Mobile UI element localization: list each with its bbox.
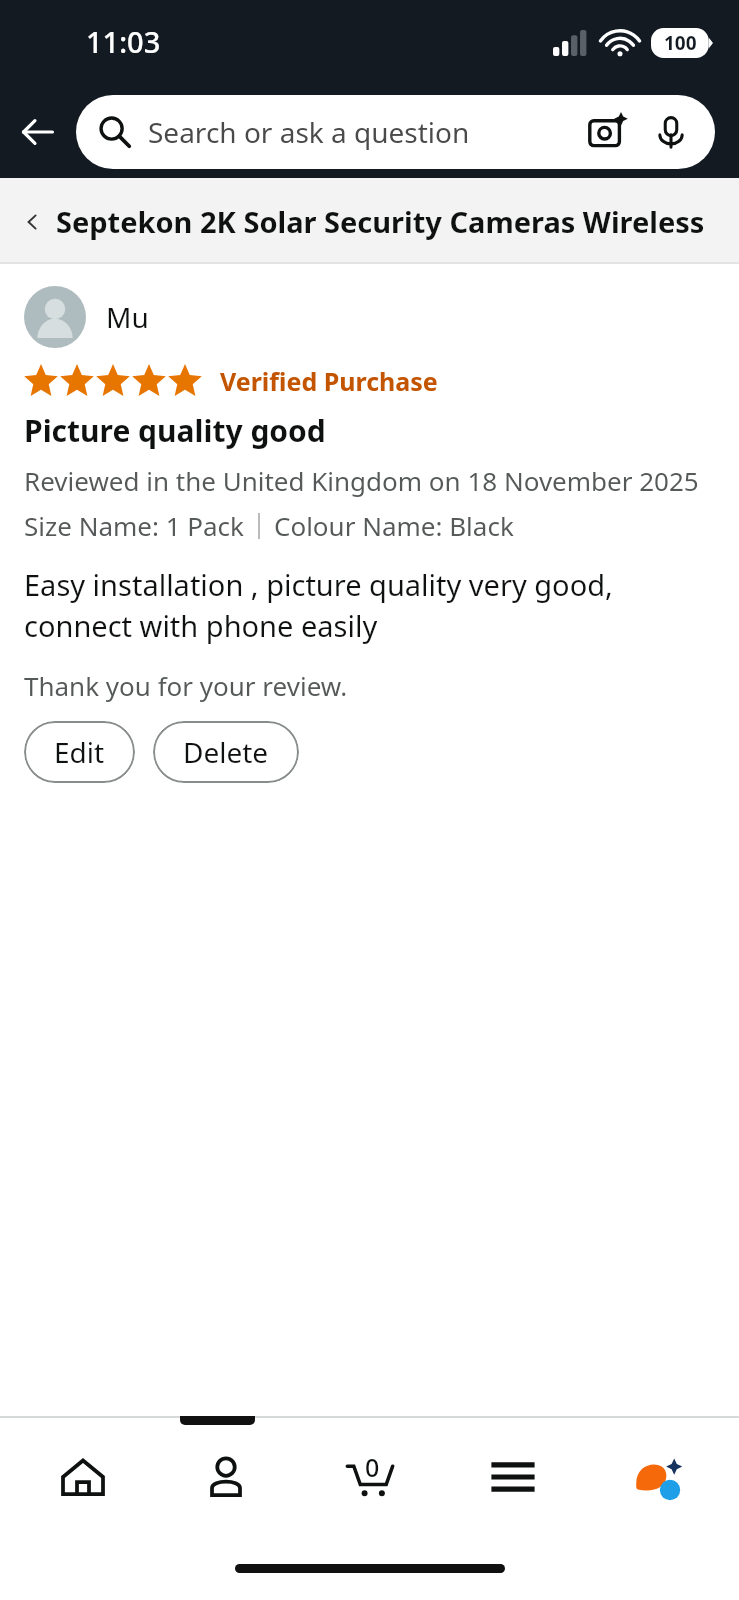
button[interactable]: Rufus assistant xyxy=(596,1418,716,1536)
staticText: Search or ask a question xyxy=(148,113,583,151)
button[interactable]: Cart xyxy=(310,1418,430,1536)
staticText: Reviewed in the United Kingdom on 18 Nov… xyxy=(24,463,699,498)
button[interactable]: Home xyxy=(23,1418,143,1536)
staticText: Delete xyxy=(183,733,269,771)
staticText: 0 xyxy=(365,1450,380,1484)
staticText: 100 xyxy=(664,30,697,56)
staticText: Edit xyxy=(54,733,105,771)
staticText: Easy installation , picture quality very… xyxy=(24,565,715,646)
staticText: Thank you for your review. xyxy=(24,668,348,703)
staticText: Septekon 2K Solar Security Cameras Wirel… xyxy=(56,202,723,241)
staticText: 11:03 xyxy=(86,22,161,61)
staticText: Verified Purchase xyxy=(220,364,438,398)
button[interactable]: Edit xyxy=(24,721,135,783)
staticText: Colour Name: Black xyxy=(274,508,514,543)
staticText: Mu xyxy=(106,298,149,336)
button[interactable]: Search by image xyxy=(583,108,631,156)
button[interactable]: Voice search xyxy=(649,110,693,154)
button[interactable]: Septekon 2K Solar Security Cameras Wirel… xyxy=(0,178,739,264)
staticText: Size Name: 1 Pack xyxy=(24,508,244,543)
button[interactable]: Back xyxy=(0,94,76,170)
button[interactable]: Menu xyxy=(453,1418,573,1536)
button[interactable]: Search or ask a question xyxy=(76,95,715,169)
button[interactable]: Your account xyxy=(166,1418,286,1536)
staticText: Picture quality good xyxy=(24,410,326,451)
button[interactable]: Delete xyxy=(153,721,299,783)
